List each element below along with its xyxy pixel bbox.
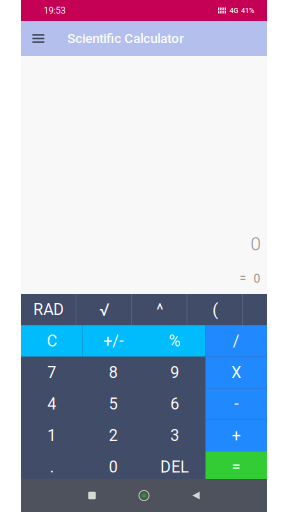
button[interactable]: 9 <box>144 357 205 388</box>
button[interactable]: Menu <box>21 21 55 56</box>
staticText: 5 <box>109 395 118 413</box>
staticText: ( <box>212 299 218 320</box>
staticText: +/- <box>103 332 123 350</box>
button[interactable]: + <box>205 420 267 451</box>
button[interactable]: - <box>205 388 267 420</box>
staticText: 0 <box>109 458 118 476</box>
staticText: 9 <box>170 363 179 382</box>
staticText: 0 <box>250 233 260 255</box>
button[interactable]: RAD <box>21 294 76 325</box>
staticText: = <box>239 272 246 286</box>
staticText: % <box>169 332 181 350</box>
staticText: 19:53 <box>43 5 65 16</box>
button[interactable]: / <box>205 325 267 357</box>
button[interactable]: 5 <box>82 388 144 420</box>
button[interactable]: 7 <box>21 357 82 388</box>
button[interactable]: Back <box>170 479 222 512</box>
staticText: 4 <box>47 395 56 413</box>
staticText: 1 <box>47 426 56 445</box>
button[interactable]: 2 <box>82 420 144 451</box>
button[interactable]: DEL <box>144 451 205 483</box>
staticText: 3 <box>170 426 179 445</box>
button[interactable]: = <box>205 451 267 483</box>
button[interactable]: 3 <box>144 420 205 451</box>
button[interactable]: Home <box>118 479 170 512</box>
button[interactable]: +/- <box>82 325 144 357</box>
button[interactable]: 1 <box>21 420 82 451</box>
button[interactable]: . <box>21 451 82 483</box>
button[interactable]: % <box>144 325 205 357</box>
staticText: X <box>231 363 241 382</box>
button[interactable]: ( <box>187 294 243 325</box>
staticText: 0 <box>253 272 260 286</box>
staticText: Scientific Calculator <box>67 31 184 46</box>
staticText: . <box>50 458 54 476</box>
button[interactable]: X <box>205 357 267 388</box>
staticText: 7 <box>47 363 56 382</box>
staticText: = <box>232 458 241 476</box>
staticText: ^ <box>156 299 163 320</box>
staticText: 41% <box>241 6 254 15</box>
button[interactable]: ^ <box>132 294 187 325</box>
button[interactable]: 4 <box>21 388 82 420</box>
button[interactable]: 0 <box>82 451 144 483</box>
button[interactable]: 6 <box>144 388 205 420</box>
staticText: + <box>232 426 241 445</box>
button[interactable]: 8 <box>82 357 144 388</box>
staticText: - <box>234 395 238 413</box>
staticText: RAD <box>33 300 64 319</box>
staticText: C <box>47 332 57 350</box>
button[interactable]: C <box>21 325 82 357</box>
staticText: DEL <box>160 458 189 476</box>
staticText: 2 <box>109 426 118 445</box>
staticText: √ <box>99 299 109 320</box>
button[interactable]: √ <box>76 294 132 325</box>
staticText: 4G <box>229 6 238 15</box>
staticText: 6 <box>170 395 179 413</box>
staticText: / <box>233 332 240 350</box>
staticText: 8 <box>109 363 118 382</box>
button[interactable]: Recents <box>66 479 118 512</box>
